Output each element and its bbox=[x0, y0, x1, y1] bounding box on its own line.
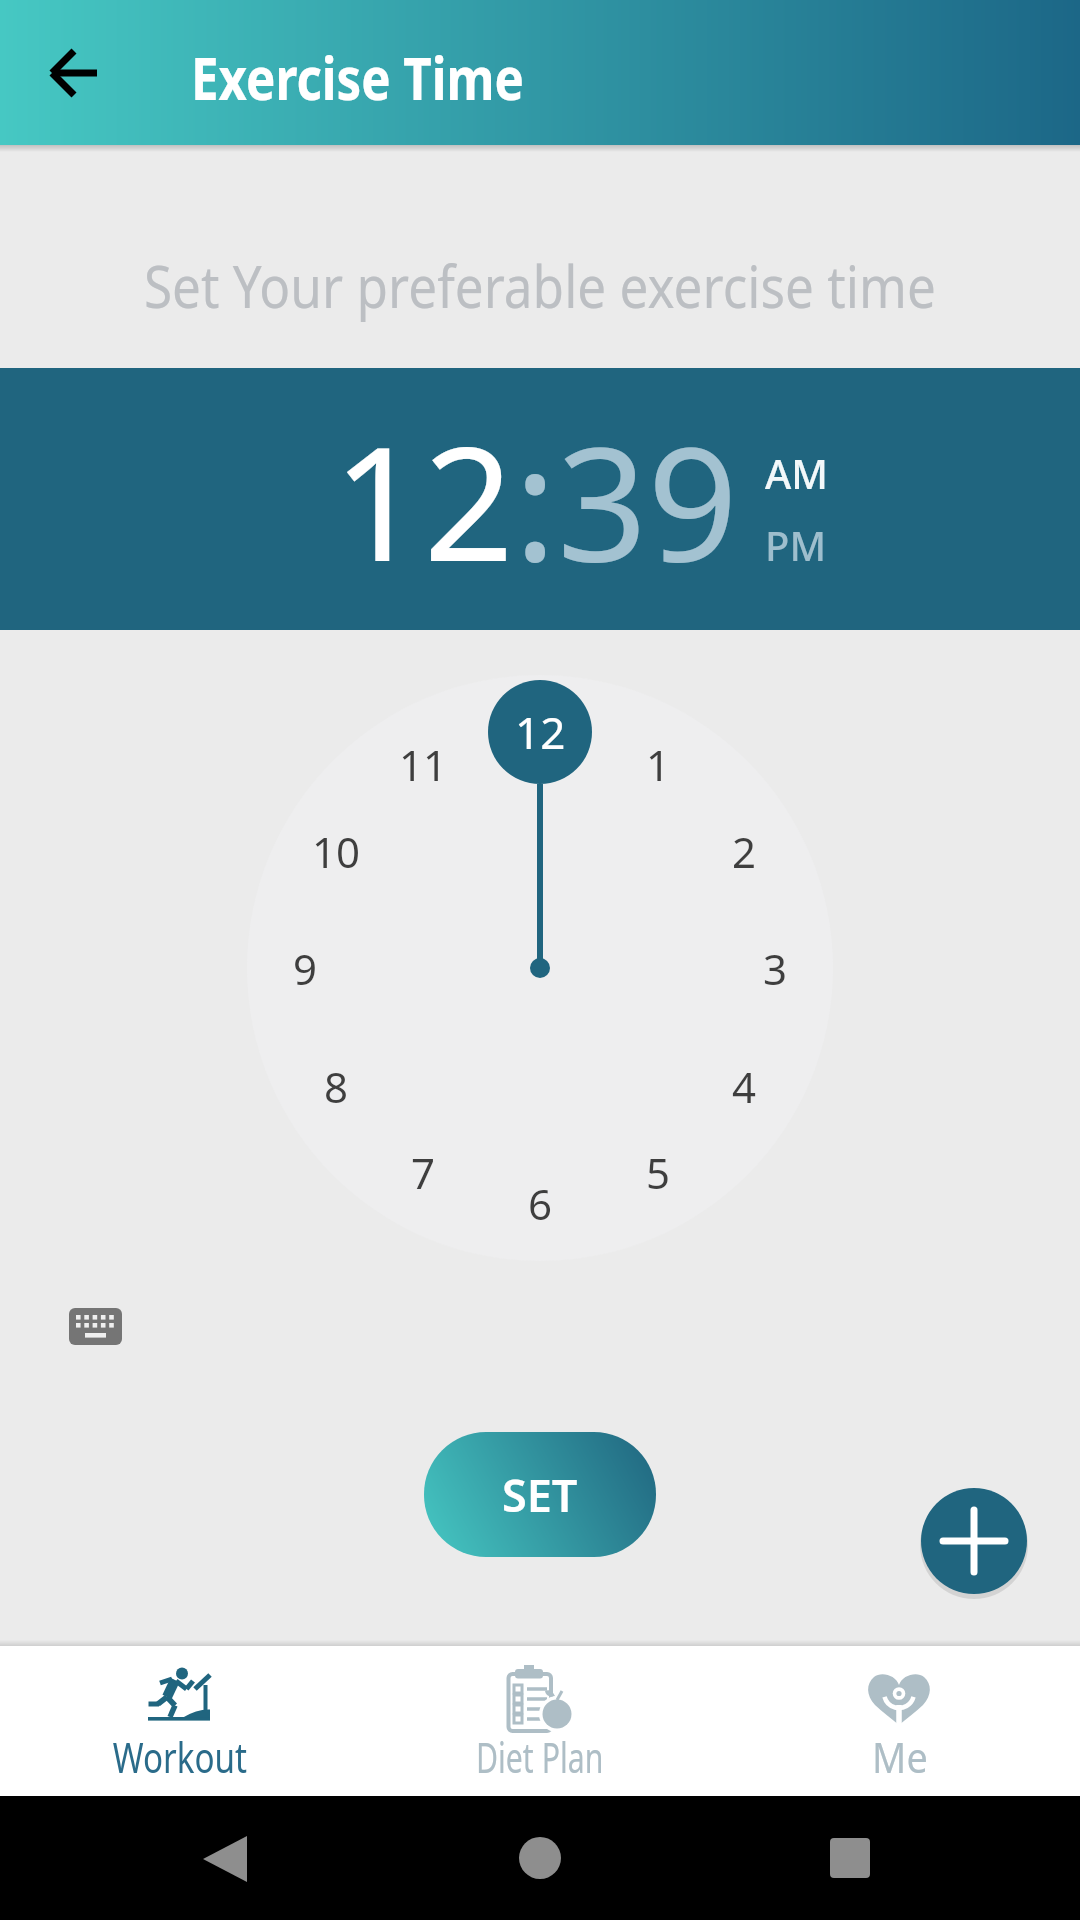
staticText: 4 bbox=[732, 1058, 757, 1115]
staticText: Exercise Time bbox=[191, 36, 524, 118]
staticText: 39 bbox=[557, 392, 738, 607]
staticText: 12 bbox=[333, 392, 514, 607]
staticText: Me bbox=[872, 1728, 928, 1778]
staticText: 12 bbox=[515, 702, 566, 762]
button[interactable] bbox=[55, 1294, 135, 1360]
staticText: 1 bbox=[646, 736, 671, 793]
staticText: 7 bbox=[411, 1144, 436, 1201]
button[interactable] bbox=[921, 1488, 1027, 1594]
staticText: 12 bbox=[516, 705, 565, 762]
button[interactable]: Me bbox=[780, 1646, 1020, 1796]
button[interactable]: SET bbox=[424, 1432, 656, 1557]
staticText: Workout bbox=[113, 1728, 247, 1778]
staticText: 11 bbox=[399, 736, 448, 793]
staticText: 3 bbox=[763, 940, 788, 997]
staticText: : bbox=[514, 392, 557, 607]
button[interactable]: Workout bbox=[60, 1646, 300, 1796]
staticText: PM bbox=[765, 518, 827, 572]
staticText: 10 bbox=[312, 823, 361, 880]
staticText: Set Your preferable exercise time bbox=[144, 246, 936, 325]
staticText: 9 bbox=[293, 940, 318, 997]
button[interactable] bbox=[30, 29, 118, 117]
staticText: 8 bbox=[324, 1058, 349, 1115]
staticText: 2 bbox=[732, 823, 757, 880]
staticText: 5 bbox=[646, 1144, 671, 1201]
button[interactable]: Diet Plan bbox=[420, 1646, 660, 1796]
staticText: 6 bbox=[528, 1175, 553, 1232]
staticText: AM bbox=[765, 446, 828, 500]
staticText: Diet Plan bbox=[476, 1728, 604, 1778]
staticText: SET bbox=[502, 1464, 578, 1525]
